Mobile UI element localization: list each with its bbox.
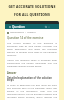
button[interactable]: Subject — [7, 31, 36, 34]
staticText: Answer — [7, 71, 17, 74]
other: Search — [45, 26, 47, 28]
staticText: FOR ALL QUESTIONS — [0, 12, 64, 16]
staticText: Hence the required value is obtained aft… — [7, 59, 57, 68]
staticText: Question 14 of the exercise — [7, 36, 57, 40]
other: More options — [48, 26, 50, 28]
staticText: In order to determine the final result w… — [7, 84, 57, 100]
staticText: Question — [12, 25, 25, 29]
staticText: Mathematics › Algebra — [10, 31, 36, 34]
staticText: GET ACCURATE SOLUTIONS — [0, 4, 64, 8]
button[interactable]: Menu — [5, 24, 59, 29]
staticText: Detailed explanation of the solution ste… — [7, 76, 57, 82]
staticText: The correct answer to this question is e… — [7, 42, 57, 57]
